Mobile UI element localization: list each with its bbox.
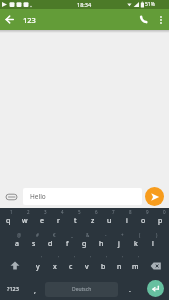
button[interactable]: [153, 9, 169, 30]
staticText: s: [32, 239, 36, 249]
button[interactable]: l: [144, 231, 161, 254]
staticText: ': [138, 255, 140, 261]
staticText: p: [158, 216, 163, 226]
button[interactable]: n: [111, 254, 127, 277]
staticText: &: [86, 232, 90, 238]
button[interactable]: x: [46, 254, 63, 277]
staticText: x: [53, 262, 57, 272]
staticText: 5: [78, 209, 81, 215]
button[interactable]: d: [42, 231, 59, 254]
staticText: z: [91, 216, 95, 226]
staticText: c: [69, 262, 73, 272]
staticText: v: [85, 262, 89, 272]
staticText: f: [66, 239, 69, 249]
staticText: ,: [34, 286, 36, 296]
button[interactable]: o: [135, 208, 152, 231]
staticText: #: [36, 232, 39, 238]
staticText: ': [58, 255, 60, 261]
staticText: r: [57, 216, 60, 226]
staticText: g: [82, 239, 87, 249]
button[interactable]: i: [118, 208, 135, 231]
button[interactable]: w: [16, 208, 33, 231]
staticText: -: [105, 232, 107, 238]
button[interactable]: z: [84, 208, 101, 231]
button[interactable]: f: [59, 231, 76, 254]
button[interactable]: [0, 254, 29, 277]
button[interactable]: .: [118, 277, 142, 300]
staticText: w: [22, 216, 28, 226]
staticText: ': [74, 255, 76, 261]
button[interactable]: [145, 187, 164, 206]
staticText: ': [90, 255, 92, 261]
button[interactable]: b: [95, 254, 111, 277]
staticText: 9: [146, 209, 149, 215]
staticText: 7: [112, 209, 115, 215]
staticText: 1: [10, 209, 13, 215]
staticText: 123: [23, 15, 36, 25]
staticText: y: [36, 262, 40, 272]
button[interactable]: j: [110, 231, 127, 254]
staticText: +: [121, 232, 124, 238]
button[interactable]: q: [0, 208, 16, 231]
button[interactable]: v: [79, 254, 95, 277]
button[interactable]: Deutsch: [45, 282, 118, 297]
staticText: 0: [163, 209, 166, 215]
staticText: 51%: [145, 1, 155, 8]
staticText: d: [48, 239, 53, 249]
staticText: 4: [61, 209, 64, 215]
staticText: 6: [95, 209, 98, 215]
staticText: 8: [129, 209, 132, 215]
staticText: 18:34: [77, 1, 92, 8]
button[interactable]: t: [67, 208, 84, 231]
button[interactable]: [0, 187, 23, 206]
button[interactable]: g: [76, 231, 93, 254]
staticText: (: [139, 232, 141, 238]
staticText: k: [134, 239, 138, 249]
button[interactable]: [147, 280, 164, 297]
staticText: ?123: [7, 285, 19, 292]
button[interactable]: c: [63, 254, 79, 277]
button[interactable]: [0, 9, 18, 30]
staticText: i: [126, 216, 128, 226]
staticText: ): [156, 232, 158, 238]
staticText: €: [53, 232, 56, 238]
button[interactable]: s: [25, 231, 42, 254]
staticText: q: [6, 216, 11, 226]
staticText: h: [99, 239, 104, 249]
button[interactable]: m: [127, 254, 143, 277]
staticText: m: [132, 262, 139, 272]
staticText: ': [122, 255, 124, 261]
staticText: Deutsch: [72, 286, 92, 293]
staticText: Hello: [30, 192, 46, 201]
staticText: e: [40, 216, 44, 226]
button[interactable]: [143, 254, 169, 277]
button[interactable]: e: [33, 208, 50, 231]
staticText: .: [129, 285, 131, 295]
staticText: u: [107, 216, 112, 226]
staticText: 2: [27, 209, 30, 215]
staticText: ': [106, 255, 108, 261]
staticText: @: [17, 232, 22, 238]
button[interactable]: u: [101, 208, 118, 231]
button[interactable]: r: [50, 208, 67, 231]
staticText: l: [152, 239, 154, 249]
staticText: _: [71, 232, 73, 238]
staticText: o: [141, 216, 146, 226]
button[interactable]: y: [29, 254, 46, 277]
button[interactable]: ,: [25, 277, 45, 300]
button[interactable]: Hello: [23, 188, 142, 205]
staticText: j: [118, 239, 120, 249]
button[interactable]: h: [93, 231, 110, 254]
staticText: b: [101, 262, 106, 272]
staticText: t: [74, 216, 77, 226]
staticText: 3: [44, 209, 47, 215]
staticText: n: [117, 262, 122, 272]
button[interactable]: a: [8, 231, 25, 254]
staticText: ': [41, 255, 43, 261]
button[interactable]: p: [152, 208, 169, 231]
button[interactable]: ?123: [0, 277, 25, 300]
button[interactable]: k: [127, 231, 144, 254]
button[interactable]: [136, 9, 153, 30]
staticText: a: [15, 239, 19, 249]
